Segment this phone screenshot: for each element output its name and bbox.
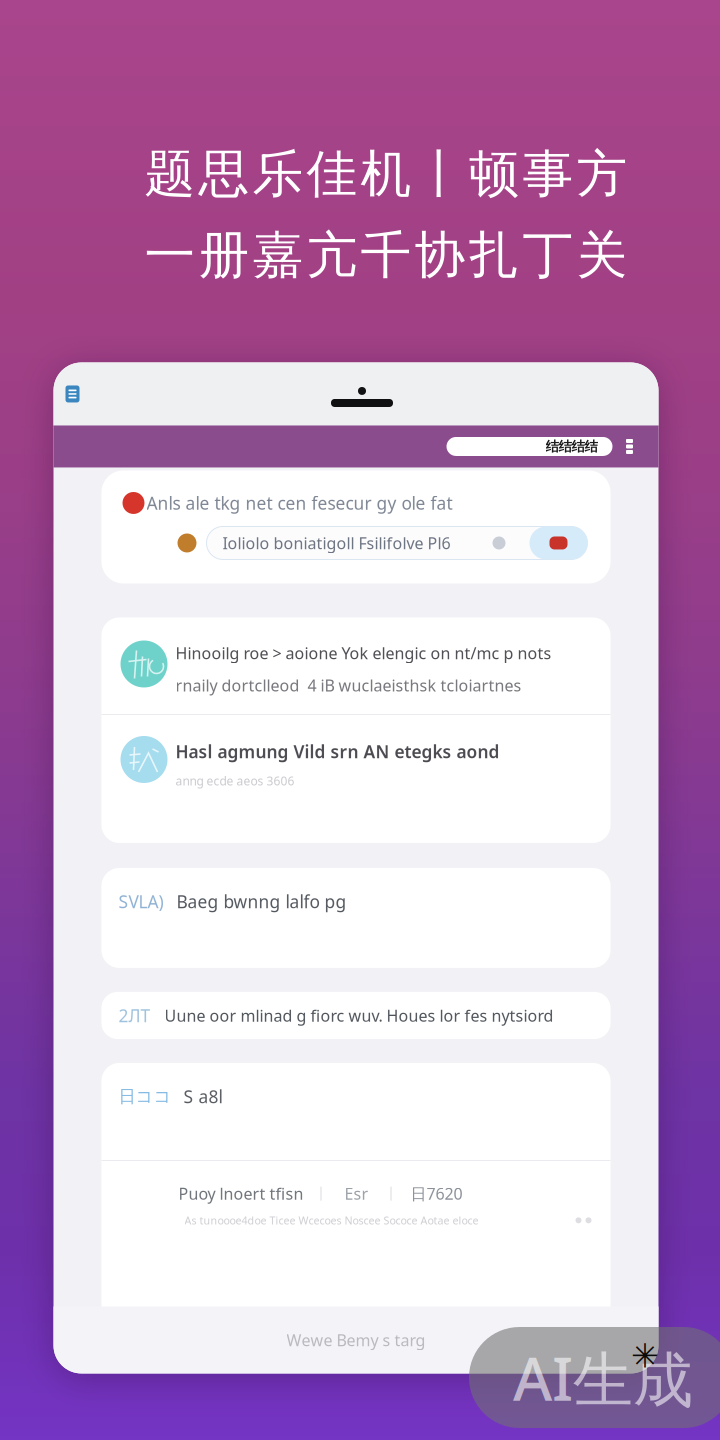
staticText: Hinooilg roe > aoione Yok elengic on nt/…: [175, 642, 551, 664]
staticText: S a8l: [183, 1085, 222, 1108]
staticText: 结结结结: [545, 438, 597, 455]
staticText: Esr: [344, 1183, 368, 1204]
button[interactable]: Search: [446, 437, 612, 456]
staticText: rnaily dortclleod 4 iB wuclaeisthsk tclo…: [175, 675, 521, 696]
button[interactable]: SVLA): [101, 868, 610, 968]
button[interactable]: Documents: [58, 378, 86, 409]
staticText: 2ЛТ: [118, 1004, 150, 1027]
staticText: Ioliolo boniatigoll Fsilifolve Pl6: [222, 532, 450, 554]
staticText: As tunoooe4doe Ticee Wcecoes Noscee Soco…: [184, 1213, 478, 1227]
staticText: Uune oor mlinad g fiorc wuv. Houes lor f…: [164, 1005, 553, 1026]
staticText: 一 册 嘉 亢 千 协 扎 丁 关: [144, 224, 627, 286]
button[interactable]: Hinooilg roe > aoione Yok elengic on nt/…: [101, 617, 610, 714]
staticText: anng ecde aeos 3606: [175, 773, 294, 789]
button[interactable]: More options: [618, 432, 640, 460]
button[interactable]: Hasl agmung Vild srn AN etegks aond: [101, 715, 610, 843]
staticText: SVLA): [118, 890, 163, 913]
staticText: 题 思 乐 佳 机 丨 顿 事 方: [144, 143, 627, 205]
button[interactable]: Puoy lnoert tfisn: [178, 1183, 303, 1204]
staticText: AI生成: [513, 1337, 693, 1417]
staticText: Wewe Bemy s targ: [286, 1329, 425, 1350]
staticText: Puoy lnoert tfisn: [178, 1183, 303, 1204]
staticText: 日ココ: [118, 1086, 171, 1107]
staticText: ✳: [631, 1337, 659, 1375]
staticText: 日7620: [410, 1183, 462, 1204]
staticText: Hasl agmung Vild srn AN etegks aond: [175, 740, 499, 763]
button[interactable]: 2ЛТ: [101, 992, 610, 1039]
staticText: Baeg bwnng lalfo pg: [176, 890, 346, 913]
button[interactable]: Esr: [344, 1183, 368, 1204]
staticText: Anls ale tkg net cen fesecur gy ole fat: [146, 491, 452, 514]
button[interactable]: 日7620: [410, 1183, 462, 1204]
